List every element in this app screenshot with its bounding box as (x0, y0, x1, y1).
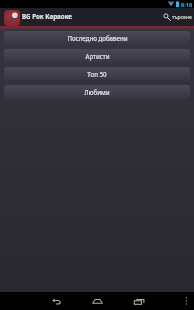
staticText: BG Рок Караоке (22, 12, 72, 20)
staticText: търсене (172, 14, 192, 21)
button[interactable]: Последно добавени (4, 31, 190, 45)
staticText: 8:16 (181, 1, 193, 9)
button[interactable]: търсене (163, 8, 194, 26)
button[interactable]: Back (42, 293, 70, 309)
button[interactable]: More options (177, 293, 194, 309)
button[interactable]: Recents (125, 293, 153, 309)
staticText: Артисти (85, 52, 110, 60)
staticText: Топ 50 (87, 70, 107, 78)
button[interactable]: App icon (4, 10, 20, 26)
button[interactable]: Home (83, 293, 111, 309)
staticText: Любими (84, 88, 110, 96)
button[interactable]: Топ 50 (4, 67, 190, 81)
button[interactable]: Артисти (4, 49, 190, 63)
button[interactable]: App icon (4, 8, 72, 26)
button[interactable]: Любими (4, 85, 190, 99)
staticText: Последно добавени (67, 34, 128, 42)
